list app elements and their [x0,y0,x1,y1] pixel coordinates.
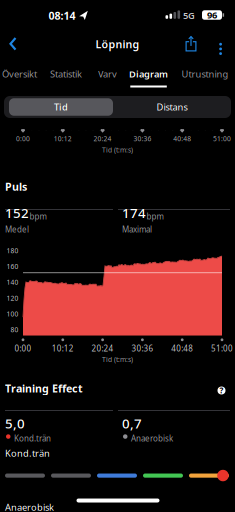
staticText: Medel [5,224,29,235]
staticText: 30:36 [131,343,153,354]
staticText: 96 [207,9,217,21]
staticText: 0:00 [16,134,30,143]
staticText: 174 [122,204,146,222]
staticText: Training Effect [5,381,83,395]
staticText: 140 [6,278,18,287]
staticText: Översikt [2,68,37,80]
button[interactable]: Diagram [127,62,170,86]
staticText: 80 [10,325,18,334]
staticText: Statistik [50,68,82,80]
staticText: Diagram [129,68,168,80]
staticText: 0,7 [122,414,142,432]
staticText: bpm [146,211,163,222]
staticText: 120 [6,294,18,303]
staticText: Maximal [122,224,152,235]
staticText: 10:12 [54,134,72,143]
staticText: Varv [98,68,117,80]
staticText: Puls [5,179,27,194]
staticText: 160 [6,262,18,271]
button[interactable]: Varv [96,62,119,86]
staticText: Distans [156,101,187,113]
staticText: 30:36 [133,134,151,143]
staticText: 180 [6,246,18,255]
staticText: Kond.trän [5,447,50,459]
staticText: 152 [5,204,29,222]
button[interactable]: More [214,37,222,50]
staticText: Kond.trän [14,433,51,444]
button[interactable]: Statistik [48,62,84,86]
staticText: 51:00 [213,134,231,143]
button[interactable]: Tid [9,98,113,116]
staticText: 20:24 [92,343,114,354]
staticText: 08:14 [48,8,75,23]
button[interactable]: Back [9,35,21,52]
staticText: Anaerobisk [131,433,173,444]
staticText: 0:00 [14,343,31,354]
staticText: Löpning [95,37,139,51]
staticText: Tid (t:m:s) [102,355,133,364]
staticText: 5G [183,9,195,21]
staticText: 40:48 [173,134,191,143]
button[interactable]: Info [217,385,225,396]
staticText: Tid [54,101,68,113]
button[interactable]: Distans [120,98,224,116]
staticText: Anaerobisk [5,501,54,512]
staticText: 20:24 [94,134,112,143]
button[interactable]: Utrustning [179,62,230,86]
staticText: bpm [29,211,46,222]
staticText: 5,0 [5,414,25,432]
staticText: Tid (t:m:s) [102,146,133,154]
staticText: 51:00 [211,343,233,354]
staticText: ? [219,385,223,396]
button[interactable]: Share [184,35,198,52]
staticText: 10:12 [52,343,74,354]
staticText: Utrustning [181,68,228,80]
button[interactable]: Översikt [0,62,39,86]
staticText: 40:48 [171,343,193,354]
staticText: 100 [6,309,18,318]
